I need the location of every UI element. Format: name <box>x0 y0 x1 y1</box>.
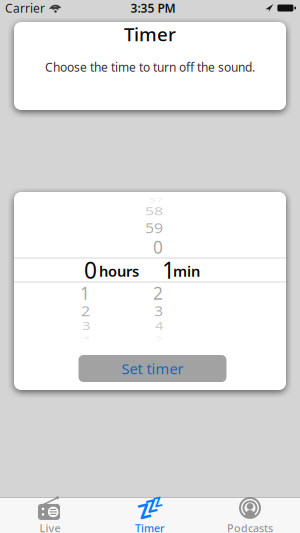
button[interactable]: Live <box>0 498 100 533</box>
staticText: Timer <box>124 22 176 46</box>
staticText: 3:35 PM <box>130 0 175 16</box>
staticText: 59 <box>145 217 163 239</box>
button[interactable]: Podcasts <box>200 498 300 533</box>
staticText: Z <box>154 493 162 510</box>
staticText: 0 <box>84 255 97 285</box>
staticText: min <box>173 261 200 281</box>
staticText: 4 <box>83 330 90 346</box>
button[interactable]: Z <box>100 498 200 533</box>
staticText: 1 <box>80 281 90 304</box>
staticText: Carrier <box>5 0 45 16</box>
staticText: Live <box>39 521 60 533</box>
staticText: Timer <box>135 521 165 533</box>
staticText: 4 <box>155 316 163 336</box>
button[interactable]: Set timer <box>78 355 226 382</box>
staticText: 58 <box>145 200 163 222</box>
staticText: Set timer <box>121 359 183 378</box>
staticText: 5 <box>156 330 163 346</box>
staticText: Z <box>146 494 156 517</box>
staticText: Podcasts <box>227 521 273 533</box>
staticText: 2 <box>153 281 163 304</box>
staticText: 3 <box>154 300 163 322</box>
staticText: Choose the time to turn off the sound. <box>45 59 255 75</box>
staticText: 57 <box>149 192 163 208</box>
staticText: 3 <box>82 316 90 336</box>
staticText: 1 <box>162 255 175 285</box>
staticText: 2 <box>81 300 90 322</box>
staticText: 0 <box>153 235 163 258</box>
staticText: Z <box>138 497 150 524</box>
staticText: hours <box>99 261 139 281</box>
